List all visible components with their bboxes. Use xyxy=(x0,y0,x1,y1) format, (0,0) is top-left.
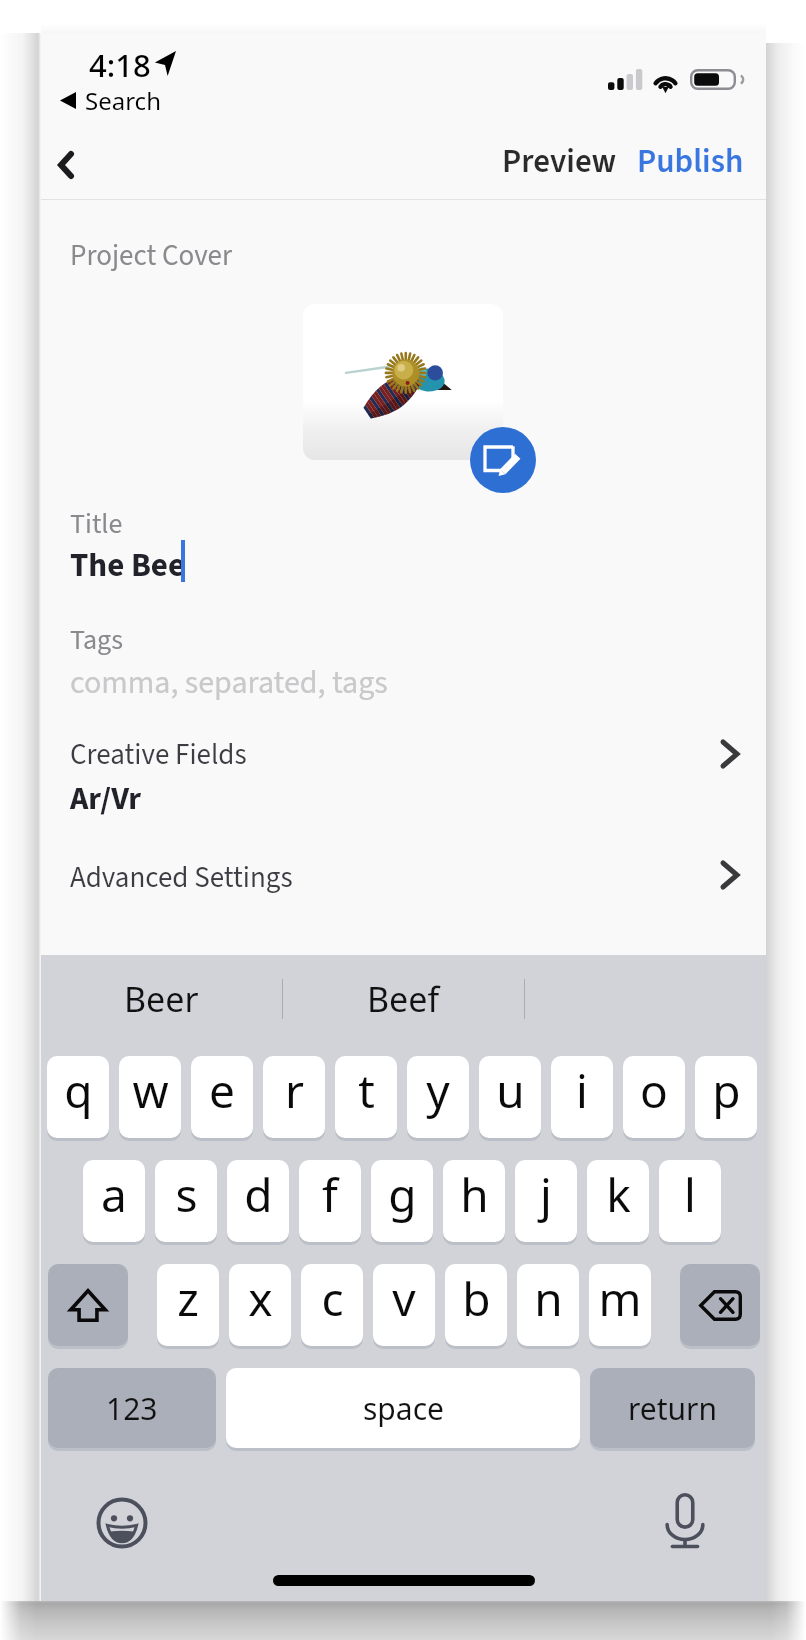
staticText: a xyxy=(101,1163,127,1226)
button[interactable]: h xyxy=(443,1160,505,1242)
staticText: 4:18 xyxy=(89,44,151,86)
button[interactable]: Emoji keyboard xyxy=(83,1485,161,1561)
button[interactable]: i xyxy=(551,1056,613,1138)
staticText: q xyxy=(64,1059,93,1122)
staticText: h xyxy=(460,1163,489,1226)
staticText: g xyxy=(388,1163,417,1226)
button[interactable] xyxy=(303,304,503,460)
button[interactable]: c xyxy=(301,1264,363,1346)
staticText: s xyxy=(175,1163,198,1226)
button[interactable]: j xyxy=(515,1160,577,1242)
button[interactable]: s xyxy=(155,1160,217,1242)
button[interactable]: Dictation xyxy=(646,1483,724,1559)
button[interactable]: r xyxy=(263,1056,325,1138)
staticText: Preview xyxy=(502,138,617,185)
staticText: Beer xyxy=(124,976,199,1022)
staticText: z xyxy=(177,1267,199,1330)
staticText: x xyxy=(248,1267,273,1330)
button[interactable]: t xyxy=(335,1056,397,1138)
staticText: k xyxy=(606,1163,631,1226)
staticText: n xyxy=(534,1267,563,1330)
button[interactable]: b xyxy=(445,1264,507,1346)
staticText: return xyxy=(628,1388,718,1429)
button[interactable]: 123 xyxy=(48,1368,216,1448)
staticText: r xyxy=(285,1059,304,1122)
staticText: The Bee xyxy=(70,542,186,589)
button[interactable]: Beer xyxy=(41,955,282,1043)
staticText: Advanced Settings xyxy=(70,857,293,898)
button[interactable]: Preview xyxy=(498,126,621,197)
staticText: w xyxy=(132,1059,169,1122)
button[interactable]: d xyxy=(227,1160,289,1242)
button[interactable]: u xyxy=(479,1056,541,1138)
staticText: Project Cover xyxy=(70,235,233,276)
button[interactable]: q xyxy=(47,1056,109,1138)
button[interactable]: Backspace xyxy=(680,1264,760,1346)
button[interactable]: Beef xyxy=(283,955,524,1043)
staticText: Title xyxy=(70,504,123,544)
staticText: Ar/Vr xyxy=(70,776,142,822)
staticText: m xyxy=(598,1267,642,1330)
staticText: Beef xyxy=(367,976,440,1022)
staticText: 123 xyxy=(106,1388,158,1429)
button[interactable]: e xyxy=(191,1056,253,1138)
staticText: f xyxy=(322,1163,338,1226)
staticText: y xyxy=(426,1059,450,1122)
button[interactable]: y xyxy=(407,1056,469,1138)
staticText: p xyxy=(712,1059,741,1122)
staticText: c xyxy=(321,1267,344,1330)
staticText: l xyxy=(684,1163,696,1226)
button[interactable]: Back xyxy=(41,122,109,200)
staticText: i xyxy=(576,1059,588,1122)
staticText: Publish xyxy=(637,138,744,185)
button[interactable]: Publish xyxy=(633,126,748,197)
button[interactable]: n xyxy=(517,1264,579,1346)
button[interactable]: Search xyxy=(60,84,161,117)
staticText: v xyxy=(392,1267,416,1330)
staticText: u xyxy=(496,1059,525,1122)
button[interactable]: a xyxy=(83,1160,145,1242)
staticText: comma, separated, tags xyxy=(70,660,388,706)
button[interactable]: l xyxy=(659,1160,721,1242)
button[interactable]: v xyxy=(373,1264,435,1346)
button[interactable]: z xyxy=(157,1264,219,1346)
staticText: b xyxy=(462,1267,491,1330)
staticText: Tags xyxy=(70,620,123,660)
button[interactable]: p xyxy=(695,1056,757,1138)
button[interactable]: Advanced Settings xyxy=(41,855,766,925)
button[interactable]: Shift xyxy=(48,1264,128,1346)
button[interactable]: f xyxy=(299,1160,361,1242)
button[interactable]: k xyxy=(587,1160,649,1242)
button[interactable]: g xyxy=(371,1160,433,1242)
button[interactable]: o xyxy=(623,1056,685,1138)
button[interactable]: x xyxy=(229,1264,291,1346)
button[interactable]: space xyxy=(226,1368,580,1448)
staticText: e xyxy=(209,1059,235,1122)
staticText: t xyxy=(358,1059,375,1122)
button[interactable]: w xyxy=(119,1056,181,1138)
staticText: Creative Fields xyxy=(70,734,247,775)
button[interactable]: m xyxy=(589,1264,651,1346)
staticText: o xyxy=(640,1059,668,1122)
button[interactable]: Creative Fields xyxy=(41,730,766,830)
staticText: j xyxy=(540,1163,552,1226)
button[interactable]: Edit cover xyxy=(470,427,536,493)
staticText: space xyxy=(363,1388,444,1429)
staticText: Search xyxy=(85,84,161,117)
button[interactable]: return xyxy=(590,1368,755,1448)
staticText: d xyxy=(244,1163,273,1226)
